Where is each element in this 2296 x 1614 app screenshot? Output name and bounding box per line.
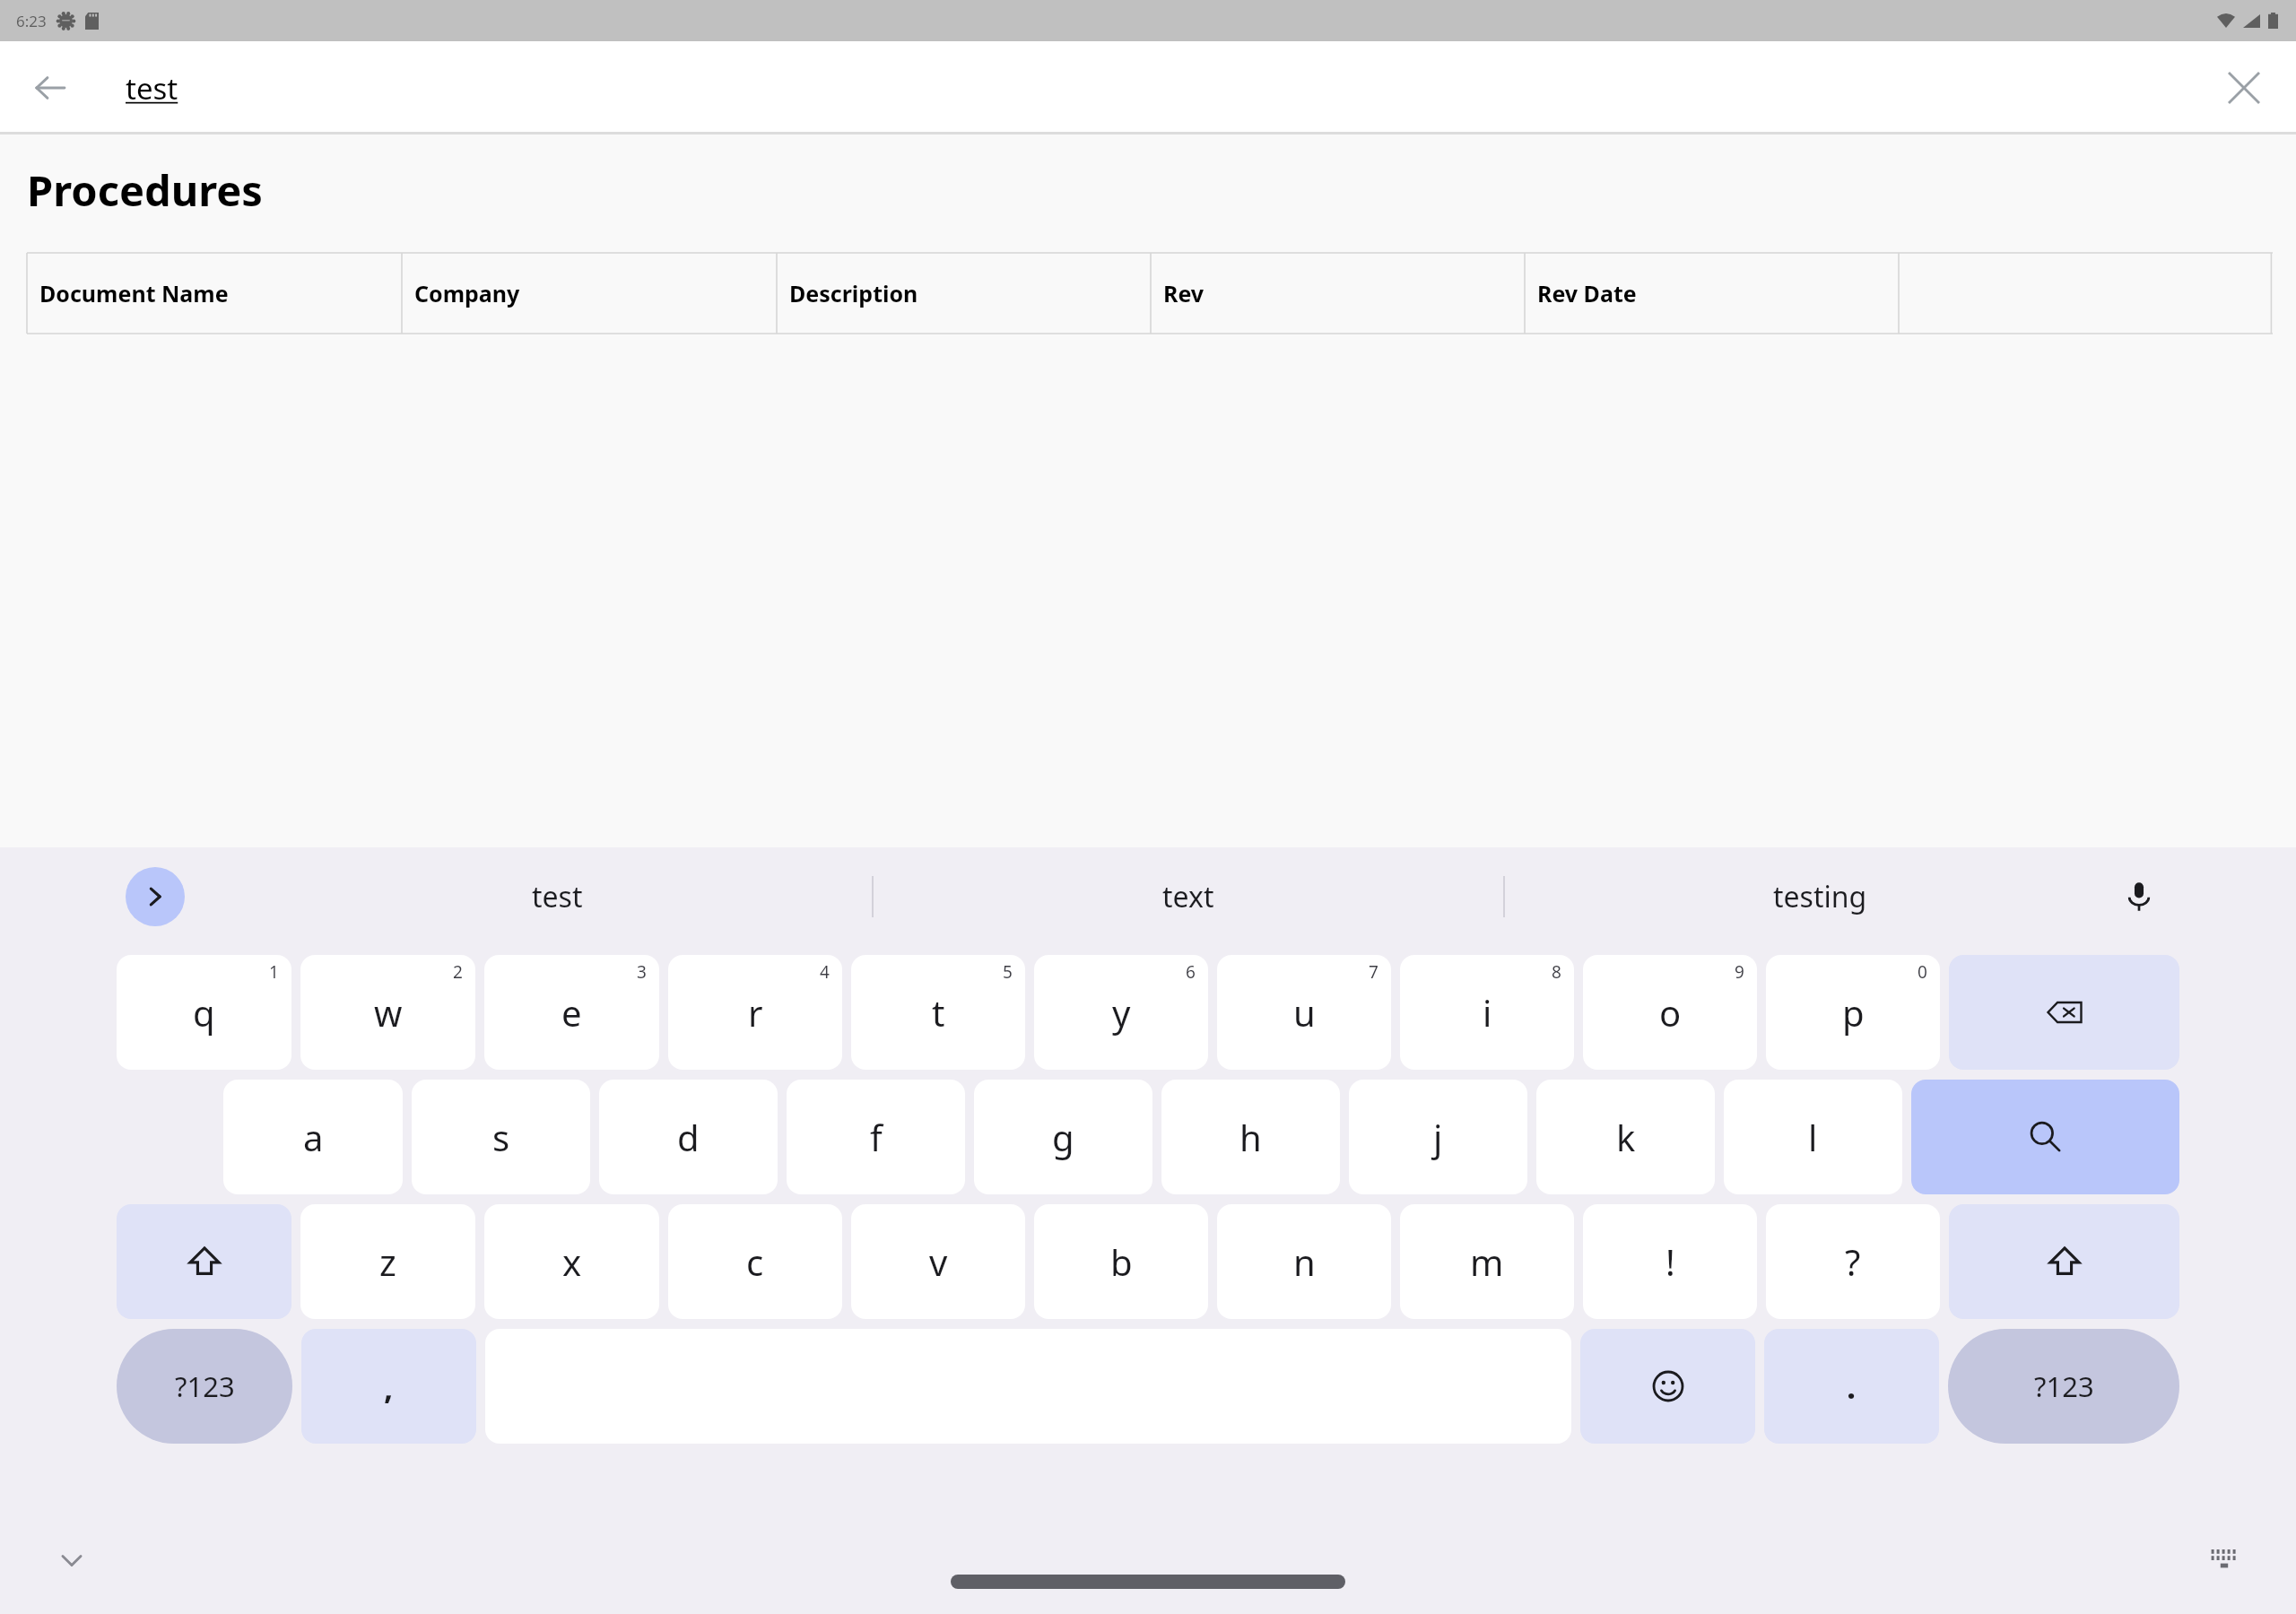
staticText: test bbox=[126, 68, 178, 108]
button[interactable]: Clear search bbox=[2212, 56, 2276, 120]
button[interactable]: f bbox=[787, 1080, 965, 1194]
staticText: k bbox=[1616, 1113, 1636, 1161]
button[interactable]: test bbox=[242, 847, 872, 946]
button[interactable]: Rev bbox=[1151, 253, 1525, 334]
button[interactable]: w bbox=[300, 955, 475, 1070]
staticText: 6 bbox=[1186, 960, 1196, 984]
button[interactable]: Search bbox=[1911, 1080, 2179, 1194]
button[interactable]: Company bbox=[402, 253, 777, 334]
staticText: 5 bbox=[1003, 960, 1013, 984]
staticText: z bbox=[379, 1237, 396, 1286]
staticText: t bbox=[932, 988, 945, 1037]
staticText: f bbox=[870, 1113, 883, 1161]
staticText: Procedures bbox=[27, 161, 263, 219]
staticText: j bbox=[1433, 1113, 1443, 1161]
button[interactable]: Document Name bbox=[27, 253, 402, 334]
staticText: Rev Date bbox=[1537, 278, 1637, 308]
button[interactable]: . bbox=[1764, 1329, 1939, 1444]
button[interactable]: ?123 bbox=[117, 1329, 292, 1444]
button[interactable]: k bbox=[1536, 1080, 1715, 1194]
button[interactable]: Backspace bbox=[1949, 955, 2179, 1070]
button[interactable]: d bbox=[599, 1080, 778, 1194]
staticText: v bbox=[929, 1237, 948, 1286]
staticText: 2 bbox=[453, 960, 463, 984]
button[interactable]: z bbox=[300, 1204, 475, 1319]
staticText: 1 bbox=[269, 960, 279, 984]
button[interactable]: ? bbox=[1766, 1204, 1940, 1319]
staticText: i bbox=[1483, 988, 1492, 1037]
staticText: p bbox=[1842, 988, 1865, 1037]
button[interactable]: q bbox=[117, 955, 291, 1070]
button[interactable]: text bbox=[874, 847, 1503, 946]
button[interactable]: m bbox=[1400, 1204, 1574, 1319]
staticText: 9 bbox=[1735, 960, 1744, 984]
staticText: Description bbox=[789, 278, 918, 308]
staticText: g bbox=[1052, 1113, 1074, 1161]
button[interactable]: x bbox=[484, 1204, 659, 1319]
staticText: u bbox=[1293, 988, 1316, 1037]
button[interactable]: ! bbox=[1583, 1204, 1757, 1319]
button[interactable]: h bbox=[1161, 1080, 1340, 1194]
button[interactable]: e bbox=[484, 955, 659, 1070]
staticText: w bbox=[374, 988, 403, 1037]
staticText: e bbox=[561, 988, 582, 1037]
staticText: Company bbox=[414, 278, 520, 308]
staticText: s bbox=[492, 1113, 510, 1161]
staticText: test bbox=[532, 877, 583, 916]
staticText: q bbox=[193, 988, 215, 1037]
staticText: o bbox=[1659, 988, 1682, 1037]
button[interactable]: a bbox=[223, 1080, 403, 1194]
staticText: c bbox=[746, 1237, 764, 1286]
button[interactable]: t bbox=[851, 955, 1025, 1070]
button[interactable]: s bbox=[412, 1080, 590, 1194]
button[interactable]: c bbox=[668, 1204, 842, 1319]
button[interactable]: Voice input bbox=[2108, 865, 2170, 928]
button[interactable]: g bbox=[974, 1080, 1152, 1194]
staticText: h bbox=[1239, 1113, 1262, 1161]
staticText: ?123 bbox=[175, 1367, 235, 1405]
button[interactable]: Shift bbox=[117, 1204, 291, 1319]
staticText: d bbox=[677, 1113, 700, 1161]
staticText: Rev bbox=[1163, 278, 1205, 308]
staticText: ?123 bbox=[2034, 1367, 2094, 1405]
staticText: Document Name bbox=[39, 278, 229, 308]
staticText: 6:23 bbox=[16, 11, 47, 31]
button[interactable]: Emoji bbox=[1580, 1329, 1755, 1444]
staticText: testing bbox=[1773, 877, 1867, 916]
button[interactable]: j bbox=[1349, 1080, 1527, 1194]
staticText: 0 bbox=[1918, 960, 1927, 984]
button[interactable]: v bbox=[851, 1204, 1025, 1319]
staticText: ! bbox=[1665, 1237, 1675, 1286]
button[interactable]: r bbox=[668, 955, 842, 1070]
button[interactable]: Switch keyboard bbox=[2197, 1533, 2251, 1587]
button[interactable]: p bbox=[1766, 955, 1940, 1070]
staticText: , bbox=[384, 1365, 394, 1409]
button[interactable]: i bbox=[1400, 955, 1574, 1070]
staticText: text bbox=[1162, 877, 1214, 916]
button[interactable]: u bbox=[1217, 955, 1391, 1070]
staticText: b bbox=[1110, 1237, 1133, 1286]
button[interactable]: Shift bbox=[1949, 1204, 2179, 1319]
staticText: 8 bbox=[1552, 960, 1561, 984]
button[interactable] bbox=[1899, 253, 2273, 334]
staticText: m bbox=[1470, 1237, 1504, 1286]
button[interactable]: Hide keyboard bbox=[45, 1533, 99, 1587]
button[interactable]: Back bbox=[18, 56, 83, 120]
button[interactable]: ?123 bbox=[1948, 1329, 2179, 1444]
staticText: r bbox=[748, 988, 763, 1037]
button[interactable]: Rev Date bbox=[1525, 253, 1899, 334]
button[interactable]: o bbox=[1583, 955, 1757, 1070]
button[interactable]: testing bbox=[1505, 847, 2135, 946]
button[interactable]: Description bbox=[777, 253, 1151, 334]
button[interactable]: , bbox=[301, 1329, 476, 1444]
button[interactable]: l bbox=[1724, 1080, 1902, 1194]
staticText: 4 bbox=[820, 960, 830, 984]
button[interactable]: test bbox=[126, 68, 178, 108]
button[interactable]: Expand suggestions bbox=[126, 867, 185, 926]
staticText: ? bbox=[1845, 1237, 1861, 1286]
button[interactable]: y bbox=[1034, 955, 1208, 1070]
staticText: 7 bbox=[1369, 960, 1378, 984]
button[interactable]: n bbox=[1217, 1204, 1391, 1319]
button[interactable]: b bbox=[1034, 1204, 1208, 1319]
